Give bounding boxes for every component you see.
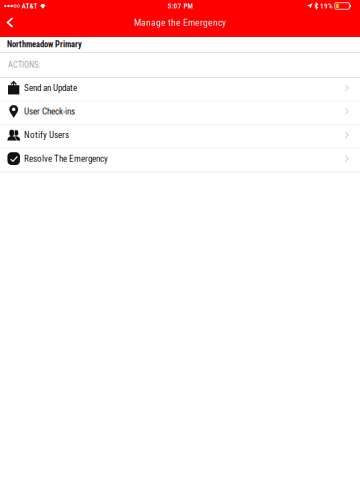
button[interactable]: Back — [0, 10, 20, 34]
button[interactable]: User Check-ins — [0, 102, 360, 125]
staticText: Notify Users — [24, 130, 69, 140]
button[interactable]: Notify Users — [0, 125, 360, 149]
staticText: 19% — [320, 2, 333, 10]
staticText: Manage the Emergency — [134, 17, 226, 28]
staticText: User Check-ins — [24, 106, 75, 117]
button[interactable]: Resolve The Emergency — [0, 149, 360, 172]
staticText: ACTIONS: — [8, 60, 40, 70]
staticText: 5:07 PM — [167, 2, 192, 10]
staticText: Send an Update — [24, 82, 77, 93]
staticText: Northmeadow Primary — [7, 40, 82, 49]
staticText: Resolve The Emergency — [24, 153, 108, 164]
staticText: AT&T — [22, 2, 38, 10]
button[interactable]: Send an Update — [0, 78, 360, 102]
